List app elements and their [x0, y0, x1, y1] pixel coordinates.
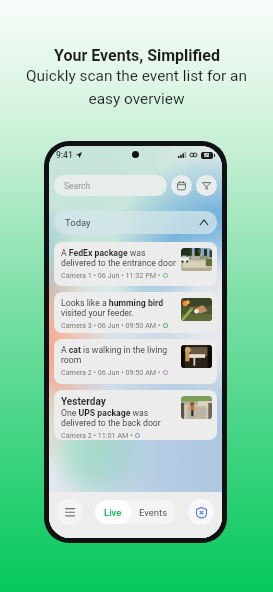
- staticText: Search: [64, 181, 91, 191]
- button[interactable]: Search: [54, 175, 167, 196]
- button[interactable]: Yesterday: [54, 390, 217, 440]
- staticText: A FedEx package was: [61, 248, 146, 258]
- staticText: Camera 3 • 06 Jun • 09:50 AM •: [61, 321, 161, 329]
- staticText: 9:41: [56, 150, 73, 160]
- button[interactable]: Menu: [57, 499, 83, 525]
- staticText: Today: [65, 217, 91, 228]
- staticText: Camera 2 • 06 Jun • 09:50 AM •: [61, 368, 161, 376]
- staticText: delivered to the entrance door: [61, 258, 176, 268]
- button[interactable]: Events: [131, 500, 176, 524]
- staticText: room: [61, 355, 82, 365]
- staticText: delivered to the back door: [61, 418, 161, 428]
- staticText: A cat is walking in the living: [61, 345, 168, 355]
- staticText: Yesterday: [61, 396, 106, 408]
- button[interactable]: A FedEx package was: [54, 242, 217, 286]
- button[interactable]: Filter: [196, 175, 217, 196]
- staticText: 52: [204, 153, 210, 158]
- staticText: Looks like a humming bird: [61, 298, 164, 308]
- button[interactable]: Security shield: [188, 499, 214, 525]
- button[interactable]: Live: [95, 500, 131, 524]
- button[interactable]: Calendar: [171, 175, 192, 196]
- button[interactable]: Looks like a humming bird: [54, 292, 217, 333]
- staticText: Live: [104, 507, 122, 518]
- staticText: Camera 1 • 06 Jun • 11:32 PM •: [61, 271, 161, 279]
- button[interactable]: Today: [54, 211, 217, 234]
- staticText: One UPS package was: [61, 408, 149, 418]
- button[interactable]: A cat is walking in the living: [54, 339, 217, 384]
- staticText: Quickly scan the event list for an easy …: [24, 67, 249, 108]
- staticText: Events: [139, 507, 168, 518]
- staticText: visited your feeder.: [61, 308, 134, 318]
- staticText: Your Events, Simplified: [54, 46, 220, 65]
- staticText: Camera 2 • 11:01 AM •: [61, 431, 133, 439]
